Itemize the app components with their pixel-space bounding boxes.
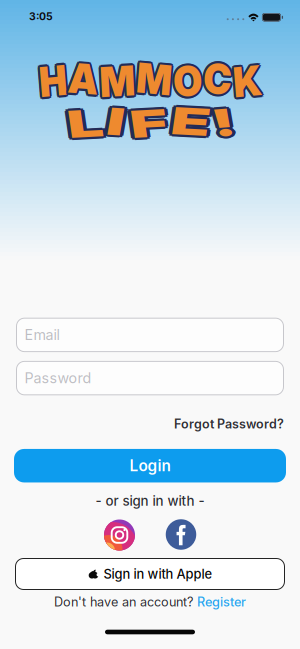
staticText: M [137, 52, 175, 102]
staticText: ! [191, 100, 202, 145]
staticText: O [174, 54, 205, 104]
staticText: L [102, 99, 123, 144]
staticText: C [207, 55, 237, 105]
staticText: M [98, 56, 136, 106]
button[interactable]: Password [16, 361, 284, 395]
staticText: C [208, 56, 238, 106]
staticText: M [133, 54, 171, 104]
button[interactable]: Email [16, 318, 284, 352]
staticText: C [207, 52, 237, 102]
staticText: Login [129, 456, 170, 475]
staticText: E [165, 97, 188, 142]
staticText: L [100, 101, 121, 146]
staticText: F [138, 101, 160, 146]
staticText: H [27, 56, 57, 106]
staticText: M [95, 54, 133, 104]
staticText: K [242, 55, 272, 105]
staticText: H [28, 54, 58, 104]
staticText: H [28, 58, 58, 108]
staticText: Password [24, 369, 91, 387]
staticText: I [126, 99, 137, 144]
button[interactable]: Login [14, 449, 286, 482]
button[interactable] [104, 519, 135, 550]
staticText: M [94, 58, 132, 108]
staticText: I [124, 101, 135, 146]
staticText: L [102, 101, 123, 146]
staticText: Register [197, 594, 246, 610]
staticText: C [211, 54, 241, 104]
staticText: E [163, 99, 186, 144]
staticText: A [60, 55, 92, 105]
staticText: O [175, 54, 206, 104]
staticText: C [210, 52, 240, 102]
staticText: O [177, 58, 208, 108]
staticText: H [29, 58, 59, 108]
button[interactable] [166, 519, 196, 550]
staticText: I [122, 100, 133, 146]
staticText: K [239, 55, 269, 105]
button[interactable]: Register [197, 594, 246, 610]
staticText: L [98, 102, 119, 148]
staticText: M [134, 52, 172, 102]
staticText: M [135, 56, 173, 106]
staticText: Sign in with Apple [103, 566, 212, 582]
staticText: F [140, 102, 162, 148]
staticText: F [138, 103, 160, 148]
staticText: A [59, 54, 91, 104]
staticText: A [63, 52, 95, 102]
staticText: E [165, 100, 188, 146]
staticText: H [32, 56, 62, 106]
staticText: M [97, 55, 135, 105]
staticText: K [240, 56, 270, 106]
staticText: O [173, 56, 204, 106]
staticText: A [63, 55, 95, 105]
staticText: L [102, 102, 123, 148]
staticText: K [240, 58, 270, 108]
staticText: Don't have an account? [54, 594, 193, 610]
staticText: I [122, 99, 133, 144]
staticText: O [174, 58, 205, 108]
staticText: E [161, 99, 184, 144]
staticText: A [64, 54, 96, 104]
staticText: M [95, 56, 133, 106]
button[interactable]: Forgot Password? [174, 416, 284, 432]
staticText: M [134, 56, 172, 106]
staticText: L [98, 99, 119, 144]
staticText: L [100, 103, 121, 148]
staticText: A [61, 56, 93, 106]
staticText: M [135, 54, 173, 104]
staticText: ! [189, 102, 200, 147]
staticText: M [95, 58, 133, 108]
staticText: F [136, 101, 158, 146]
staticText: M [138, 54, 176, 104]
staticText: O [178, 56, 209, 106]
staticText: M [135, 52, 173, 102]
staticText: K [243, 56, 273, 106]
staticText: Forgot Password? [174, 416, 284, 432]
staticText: K [242, 58, 272, 108]
staticText: F [138, 99, 160, 144]
staticText: O [175, 56, 206, 106]
staticText: E [161, 97, 184, 142]
staticText: O [177, 54, 208, 104]
button[interactable]: Sign in with Apple [15, 558, 285, 590]
staticText: A [61, 51, 93, 101]
staticText: ! [187, 100, 198, 145]
staticText: I [126, 97, 137, 142]
staticText: C [210, 55, 240, 105]
staticText: Email [24, 326, 59, 344]
staticText: O [175, 58, 206, 108]
staticText: F [136, 102, 158, 148]
staticText: M [97, 58, 135, 108]
staticText: E [165, 99, 188, 144]
staticText: H [29, 56, 59, 106]
staticText: F [140, 101, 162, 146]
staticText: ! [189, 98, 200, 143]
staticText: ! [191, 101, 202, 147]
staticText: E [163, 101, 186, 146]
staticText: M [137, 56, 175, 106]
staticText: C [208, 54, 238, 104]
staticText: A [60, 52, 92, 102]
staticText: - or sign in with - [95, 493, 204, 509]
staticText: M [94, 55, 132, 105]
